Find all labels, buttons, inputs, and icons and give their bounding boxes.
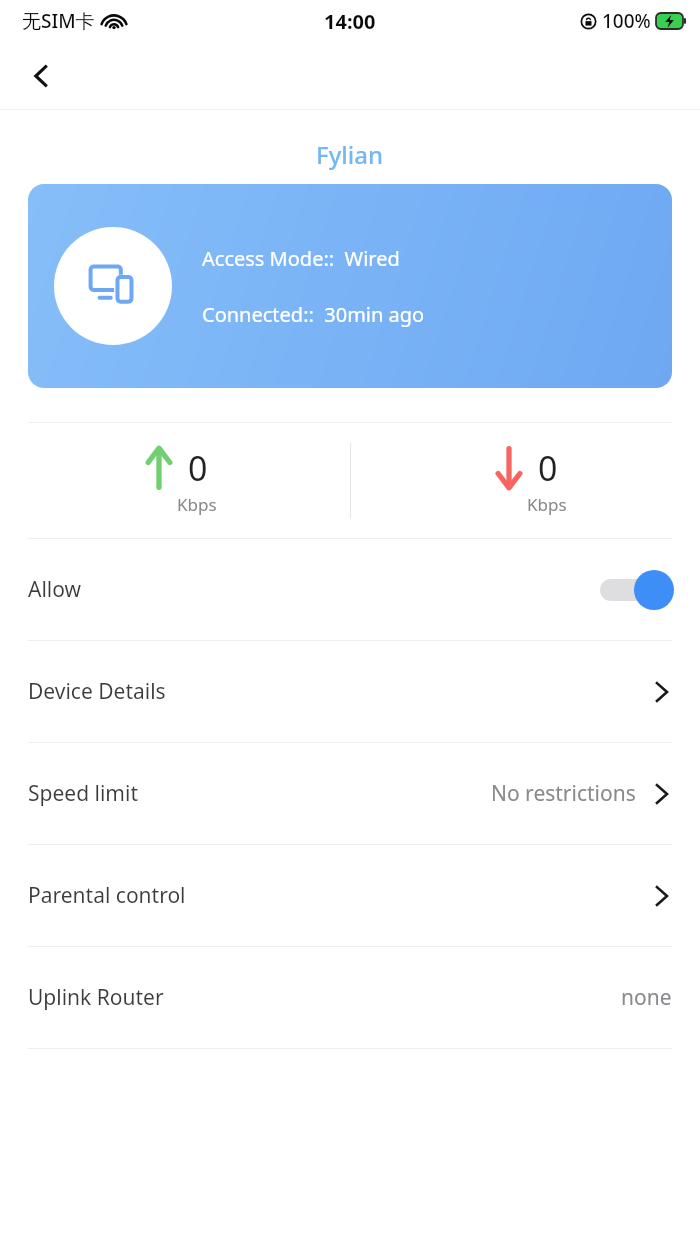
staticText: Parental control bbox=[28, 881, 186, 910]
staticText: Fylian bbox=[316, 138, 384, 171]
staticText: Uplink Router bbox=[28, 983, 164, 1012]
staticText: none bbox=[621, 983, 672, 1012]
button[interactable]: Speed limit bbox=[0, 743, 700, 844]
staticText: 无SIM卡 bbox=[22, 8, 95, 34]
staticText: Speed limit bbox=[28, 779, 138, 808]
staticText: 0 bbox=[538, 445, 558, 491]
staticText: Allow bbox=[28, 575, 82, 604]
button[interactable]: Allow bbox=[0, 539, 700, 640]
staticText: Kbps bbox=[177, 493, 217, 516]
staticText: Access Mode:: Wired bbox=[202, 245, 400, 272]
staticText: Device Details bbox=[28, 677, 166, 706]
button[interactable]: Uplink Router bbox=[0, 947, 700, 1048]
button[interactable]: Device Details bbox=[0, 641, 700, 742]
button[interactable]: Access Mode:: Wired bbox=[28, 184, 672, 388]
staticText: 100% bbox=[602, 8, 651, 34]
staticText: 0 bbox=[188, 445, 208, 491]
button[interactable]: Parental control bbox=[0, 845, 700, 946]
staticText: 14:00 bbox=[324, 8, 376, 35]
staticText: Connected:: 30min ago bbox=[202, 301, 425, 328]
staticText: Kbps bbox=[527, 493, 567, 516]
button[interactable]: Back bbox=[14, 49, 68, 103]
staticText: No restrictions bbox=[491, 779, 636, 808]
